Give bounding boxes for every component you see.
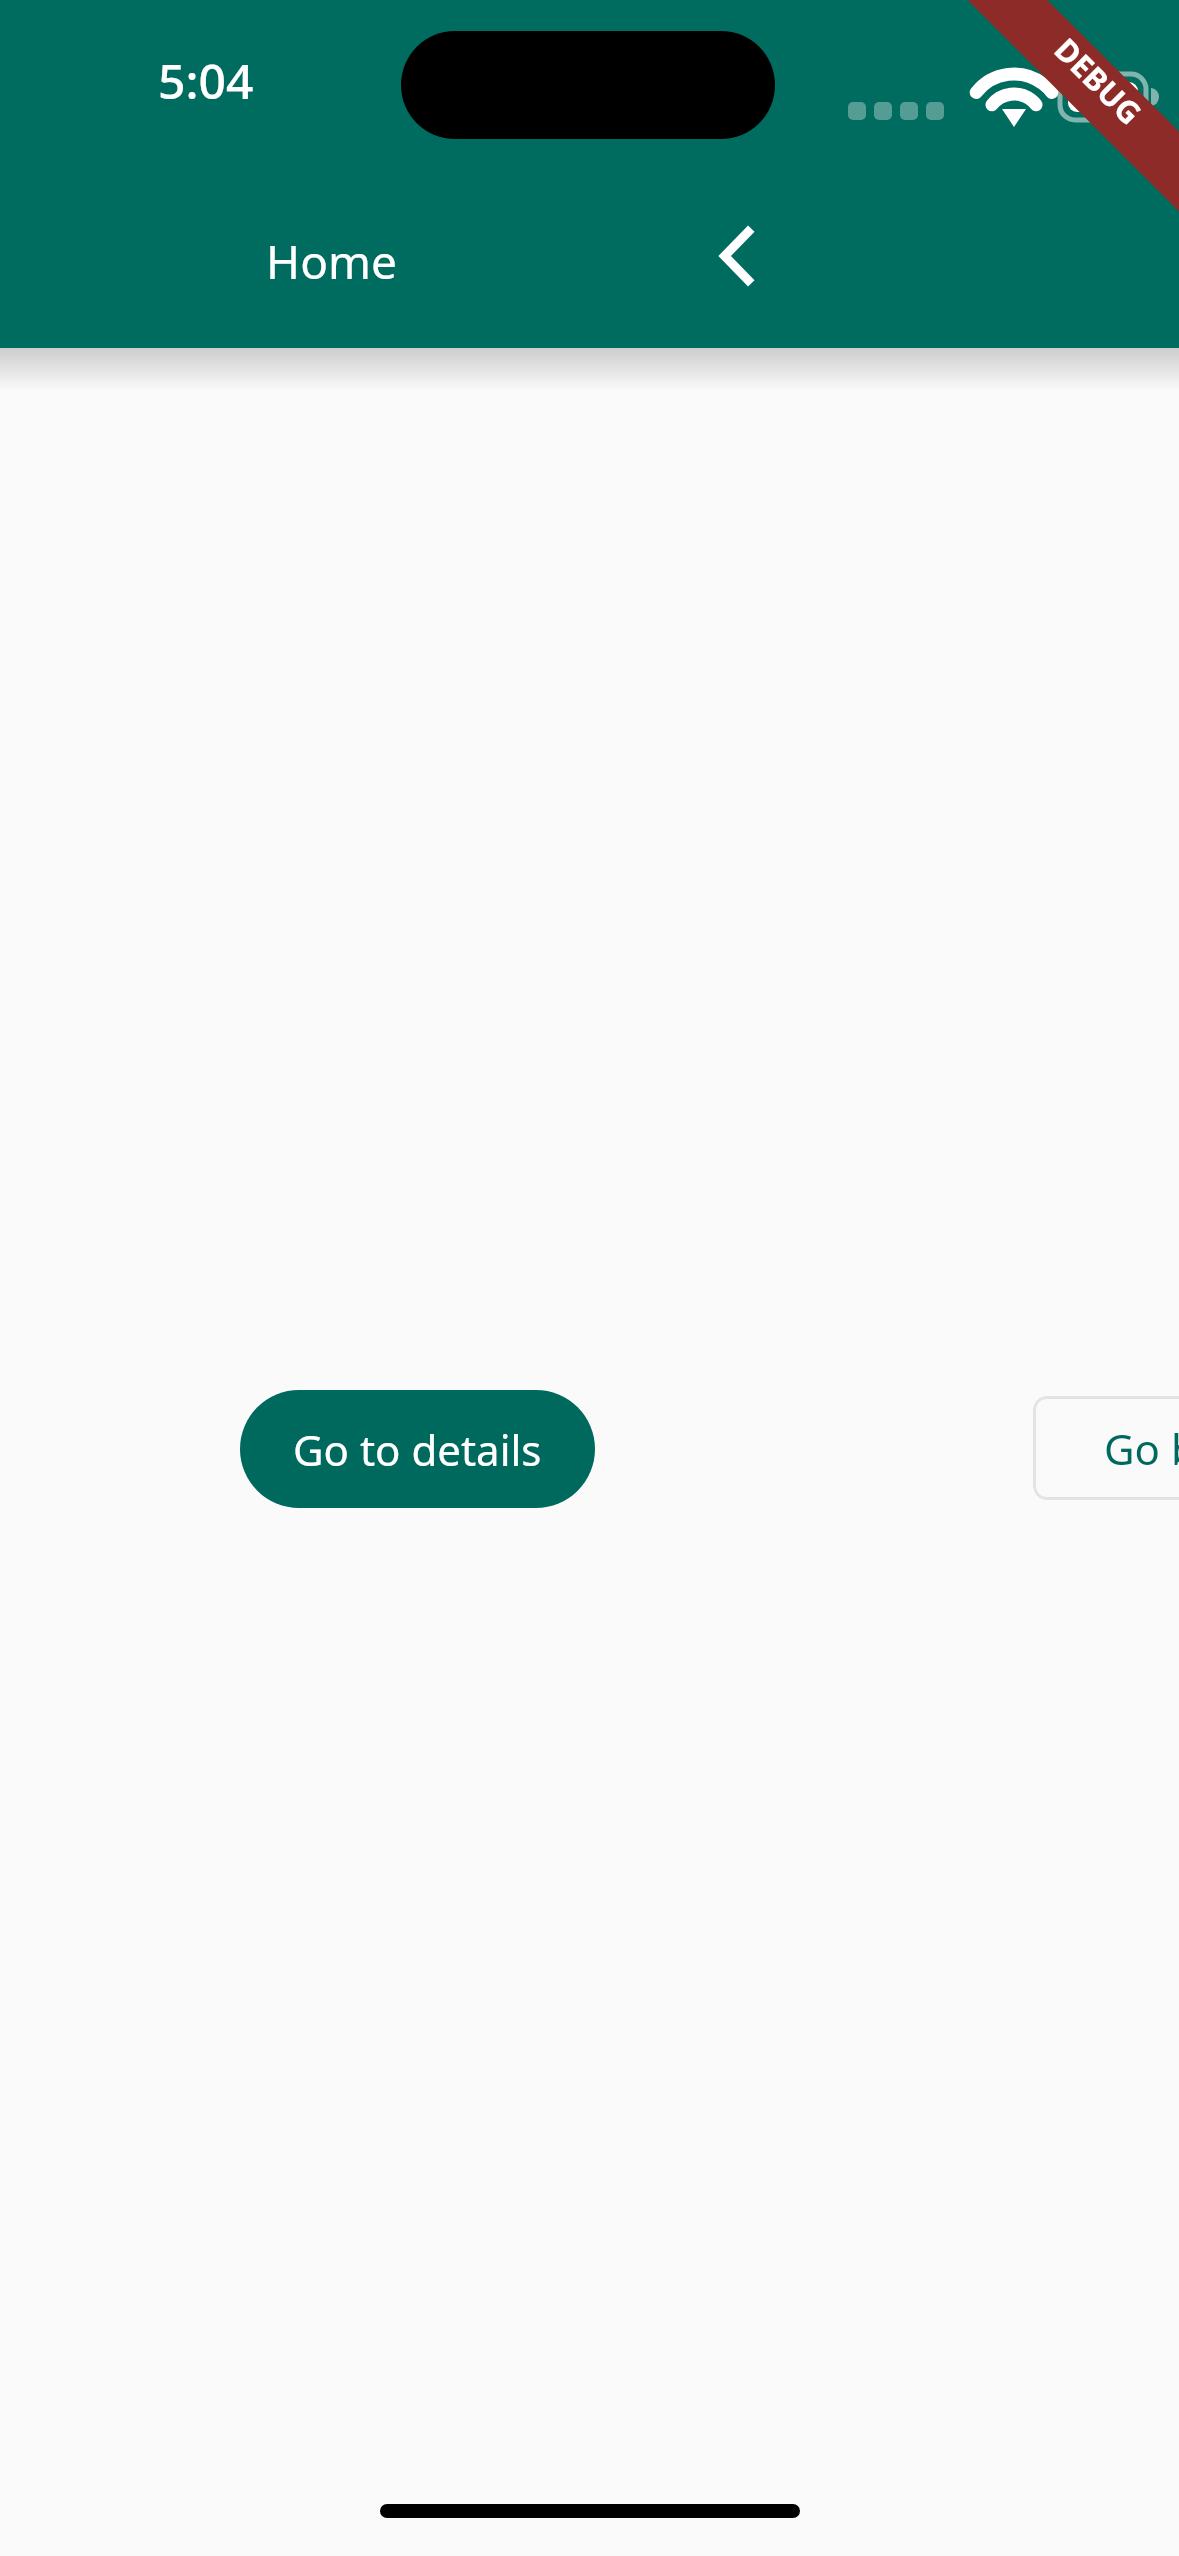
staticText: Go to details (293, 1421, 542, 1478)
staticText: Go back (1104, 1420, 1179, 1477)
staticText: 5:04 (158, 48, 254, 113)
staticText: Home (0, 230, 663, 293)
button[interactable]: Go to details (240, 1390, 595, 1508)
button[interactable]: Go back (1033, 1396, 1179, 1500)
button[interactable]: Back (677, 196, 797, 316)
staticText: DEBUG (1046, 28, 1151, 134)
